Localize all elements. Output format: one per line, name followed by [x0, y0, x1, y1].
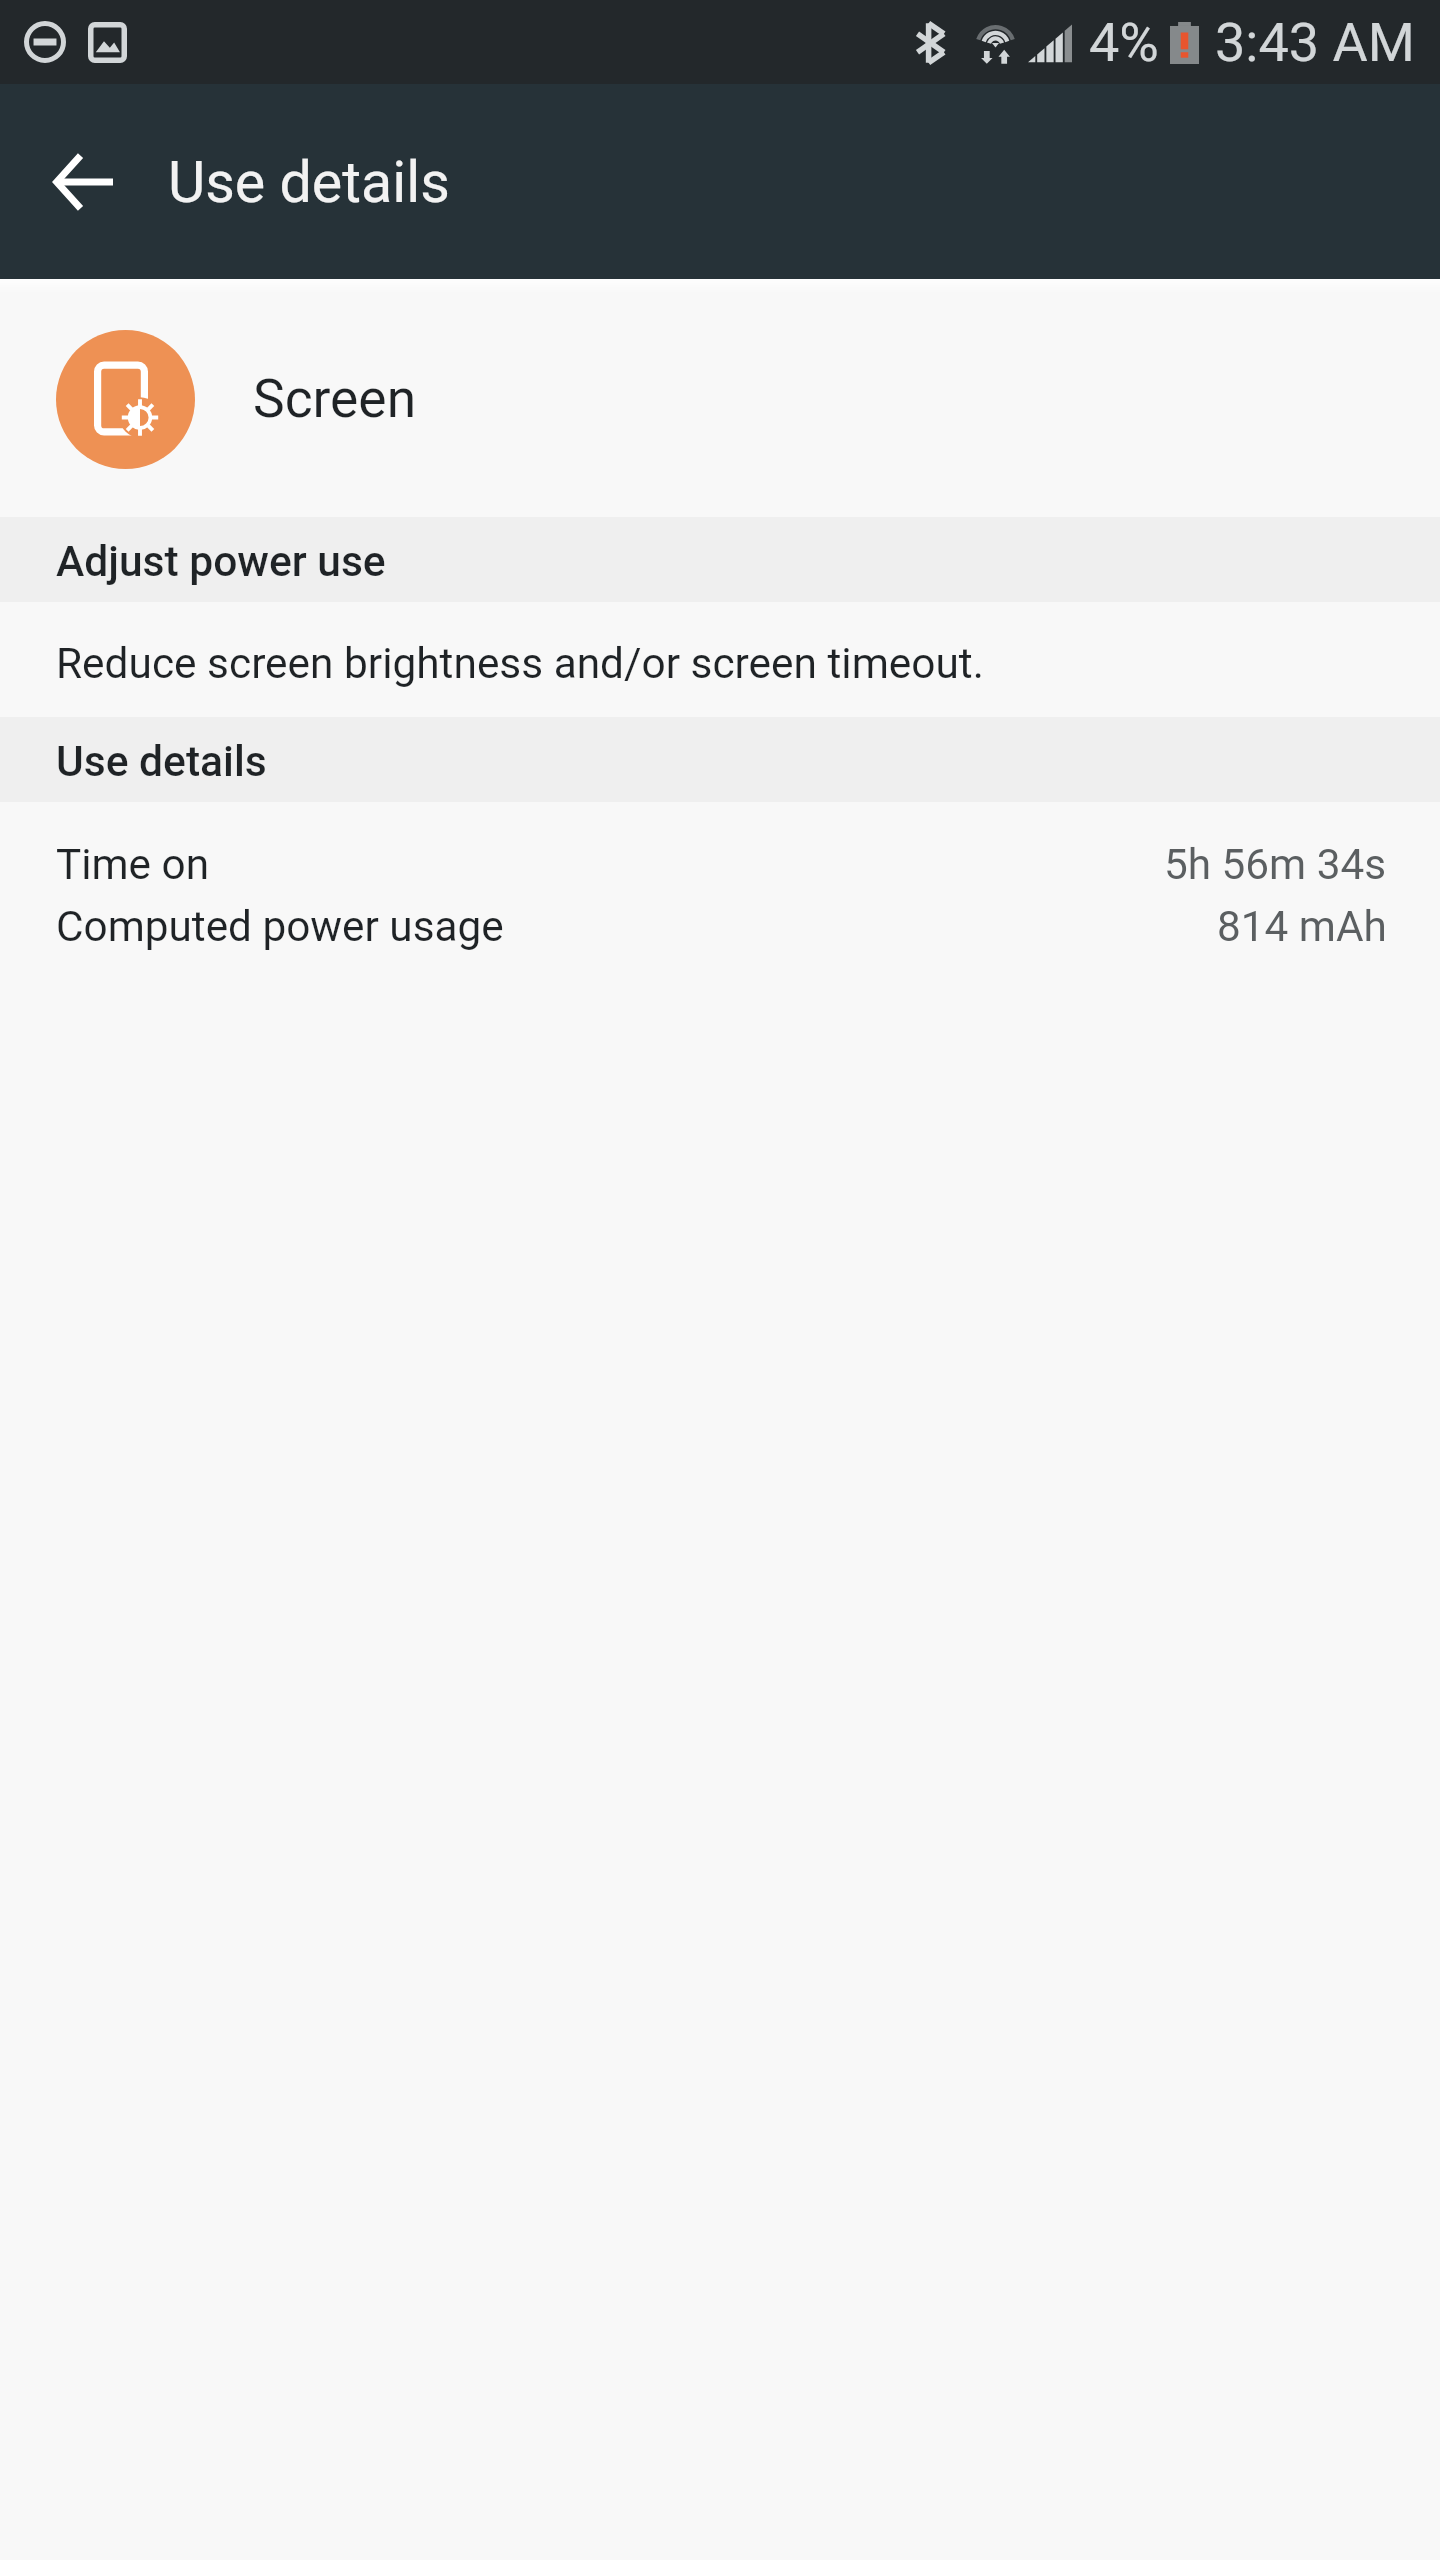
button[interactable]: Time on	[0, 834, 1440, 896]
staticText: 4%	[1089, 11, 1159, 74]
staticText: Adjust power use	[56, 537, 386, 587]
button[interactable]: Reduce screen brightness and/or screen t…	[0, 602, 1440, 717]
staticText: 814 mAh	[1217, 902, 1387, 952]
staticText: Reduce screen brightness and/or screen t…	[56, 639, 984, 689]
other: Battery low, 4 percent	[1170, 22, 1199, 64]
other: Mobile signal full	[1028, 22, 1072, 64]
other: Screenshot captured	[88, 22, 127, 63]
staticText: Use details	[168, 149, 450, 216]
other: Wi-Fi connected	[977, 22, 1014, 64]
button[interactable]: Computed power usage	[0, 896, 1440, 958]
other: Screen brightness	[56, 330, 195, 469]
staticText: 3:43 AM	[1215, 11, 1415, 74]
other: Bluetooth on	[916, 22, 946, 64]
staticText: Computed power usage	[56, 902, 504, 952]
other: Do not disturb	[24, 21, 66, 63]
button[interactable]: Back	[21, 119, 147, 245]
button[interactable]: Screen brightness	[0, 293, 1440, 517]
staticText: Time on	[56, 840, 210, 890]
staticText: 5h 56m 34s	[1164, 840, 1387, 890]
staticText: Screen	[253, 368, 417, 430]
staticText: Use details	[56, 737, 267, 787]
